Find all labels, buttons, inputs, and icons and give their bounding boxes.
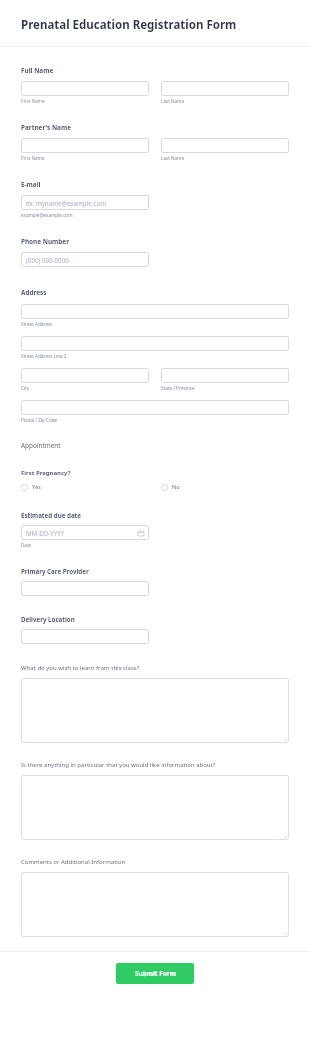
button[interactable]: Partner Last Name bbox=[161, 138, 289, 153]
staticText: Is there anything in particular that you… bbox=[21, 761, 216, 769]
button[interactable]: No bbox=[161, 483, 289, 491]
button[interactable]: Phone Number bbox=[21, 252, 149, 267]
staticText: Appointment bbox=[21, 441, 61, 450]
staticText: Street Address Line 2 bbox=[21, 353, 67, 359]
staticText: No bbox=[172, 483, 180, 491]
button[interactable]: Comments or Additional Information bbox=[21, 872, 289, 937]
staticText: Street Address bbox=[21, 321, 53, 327]
button[interactable]: City bbox=[21, 368, 149, 383]
staticText: Partner's Name bbox=[21, 123, 71, 132]
staticText: First Name bbox=[21, 98, 45, 104]
staticText: Address bbox=[21, 288, 47, 297]
staticText: Last Name bbox=[161, 155, 184, 161]
button[interactable]: Last Name bbox=[161, 81, 289, 96]
button[interactable]: Street Address bbox=[21, 304, 289, 319]
staticText: example@example.com bbox=[21, 212, 73, 218]
button[interactable]: State / Province bbox=[161, 368, 289, 383]
staticText: City bbox=[21, 385, 30, 391]
staticText: Prenatal Education Registration Form bbox=[21, 17, 237, 33]
button[interactable]: Is there anything in particular that you… bbox=[21, 775, 289, 840]
staticText: Estimated due date bbox=[21, 511, 81, 519]
staticText: State / Province bbox=[161, 385, 195, 391]
staticText: E-mail bbox=[21, 180, 41, 189]
staticText: Delivery Location bbox=[21, 615, 75, 623]
staticText: (000) 000-0000 bbox=[26, 256, 69, 264]
staticText: MM-DD-YYYY bbox=[26, 529, 65, 537]
staticText: Submit Form bbox=[135, 969, 176, 978]
staticText: First Pregnancy? bbox=[21, 469, 71, 477]
button[interactable]: Yes bbox=[21, 483, 149, 491]
button[interactable]: Partner First Name bbox=[21, 138, 149, 153]
button[interactable]: E-mail bbox=[21, 195, 149, 210]
staticText: Yes bbox=[32, 483, 41, 491]
button[interactable]: Delivery Location bbox=[21, 629, 149, 644]
button[interactable]: First Name bbox=[21, 81, 149, 96]
staticText: Last Name bbox=[161, 98, 184, 104]
staticText: Full Name bbox=[21, 66, 54, 75]
button[interactable]: Primary Care Provider bbox=[21, 581, 149, 596]
staticText: Phone Number bbox=[21, 237, 70, 246]
staticText: Primary Care Provider bbox=[21, 567, 89, 575]
button[interactable]: Estimated due date bbox=[21, 525, 149, 540]
staticText: First Name bbox=[21, 155, 45, 161]
staticText: Comments or Additional Information bbox=[21, 858, 126, 866]
staticText: ex: myname@example.com bbox=[26, 199, 106, 207]
staticText: What do you wish to learn from this clas… bbox=[21, 664, 140, 672]
staticText: Postal / Zip Code bbox=[21, 417, 58, 423]
button[interactable]: Postal / Zip Code bbox=[21, 400, 289, 415]
button[interactable]: Submit Form bbox=[116, 963, 194, 984]
button[interactable]: Street Address Line 2 bbox=[21, 336, 289, 351]
button[interactable]: What do you wish to learn from this clas… bbox=[21, 678, 289, 743]
staticText: Date bbox=[21, 542, 32, 548]
